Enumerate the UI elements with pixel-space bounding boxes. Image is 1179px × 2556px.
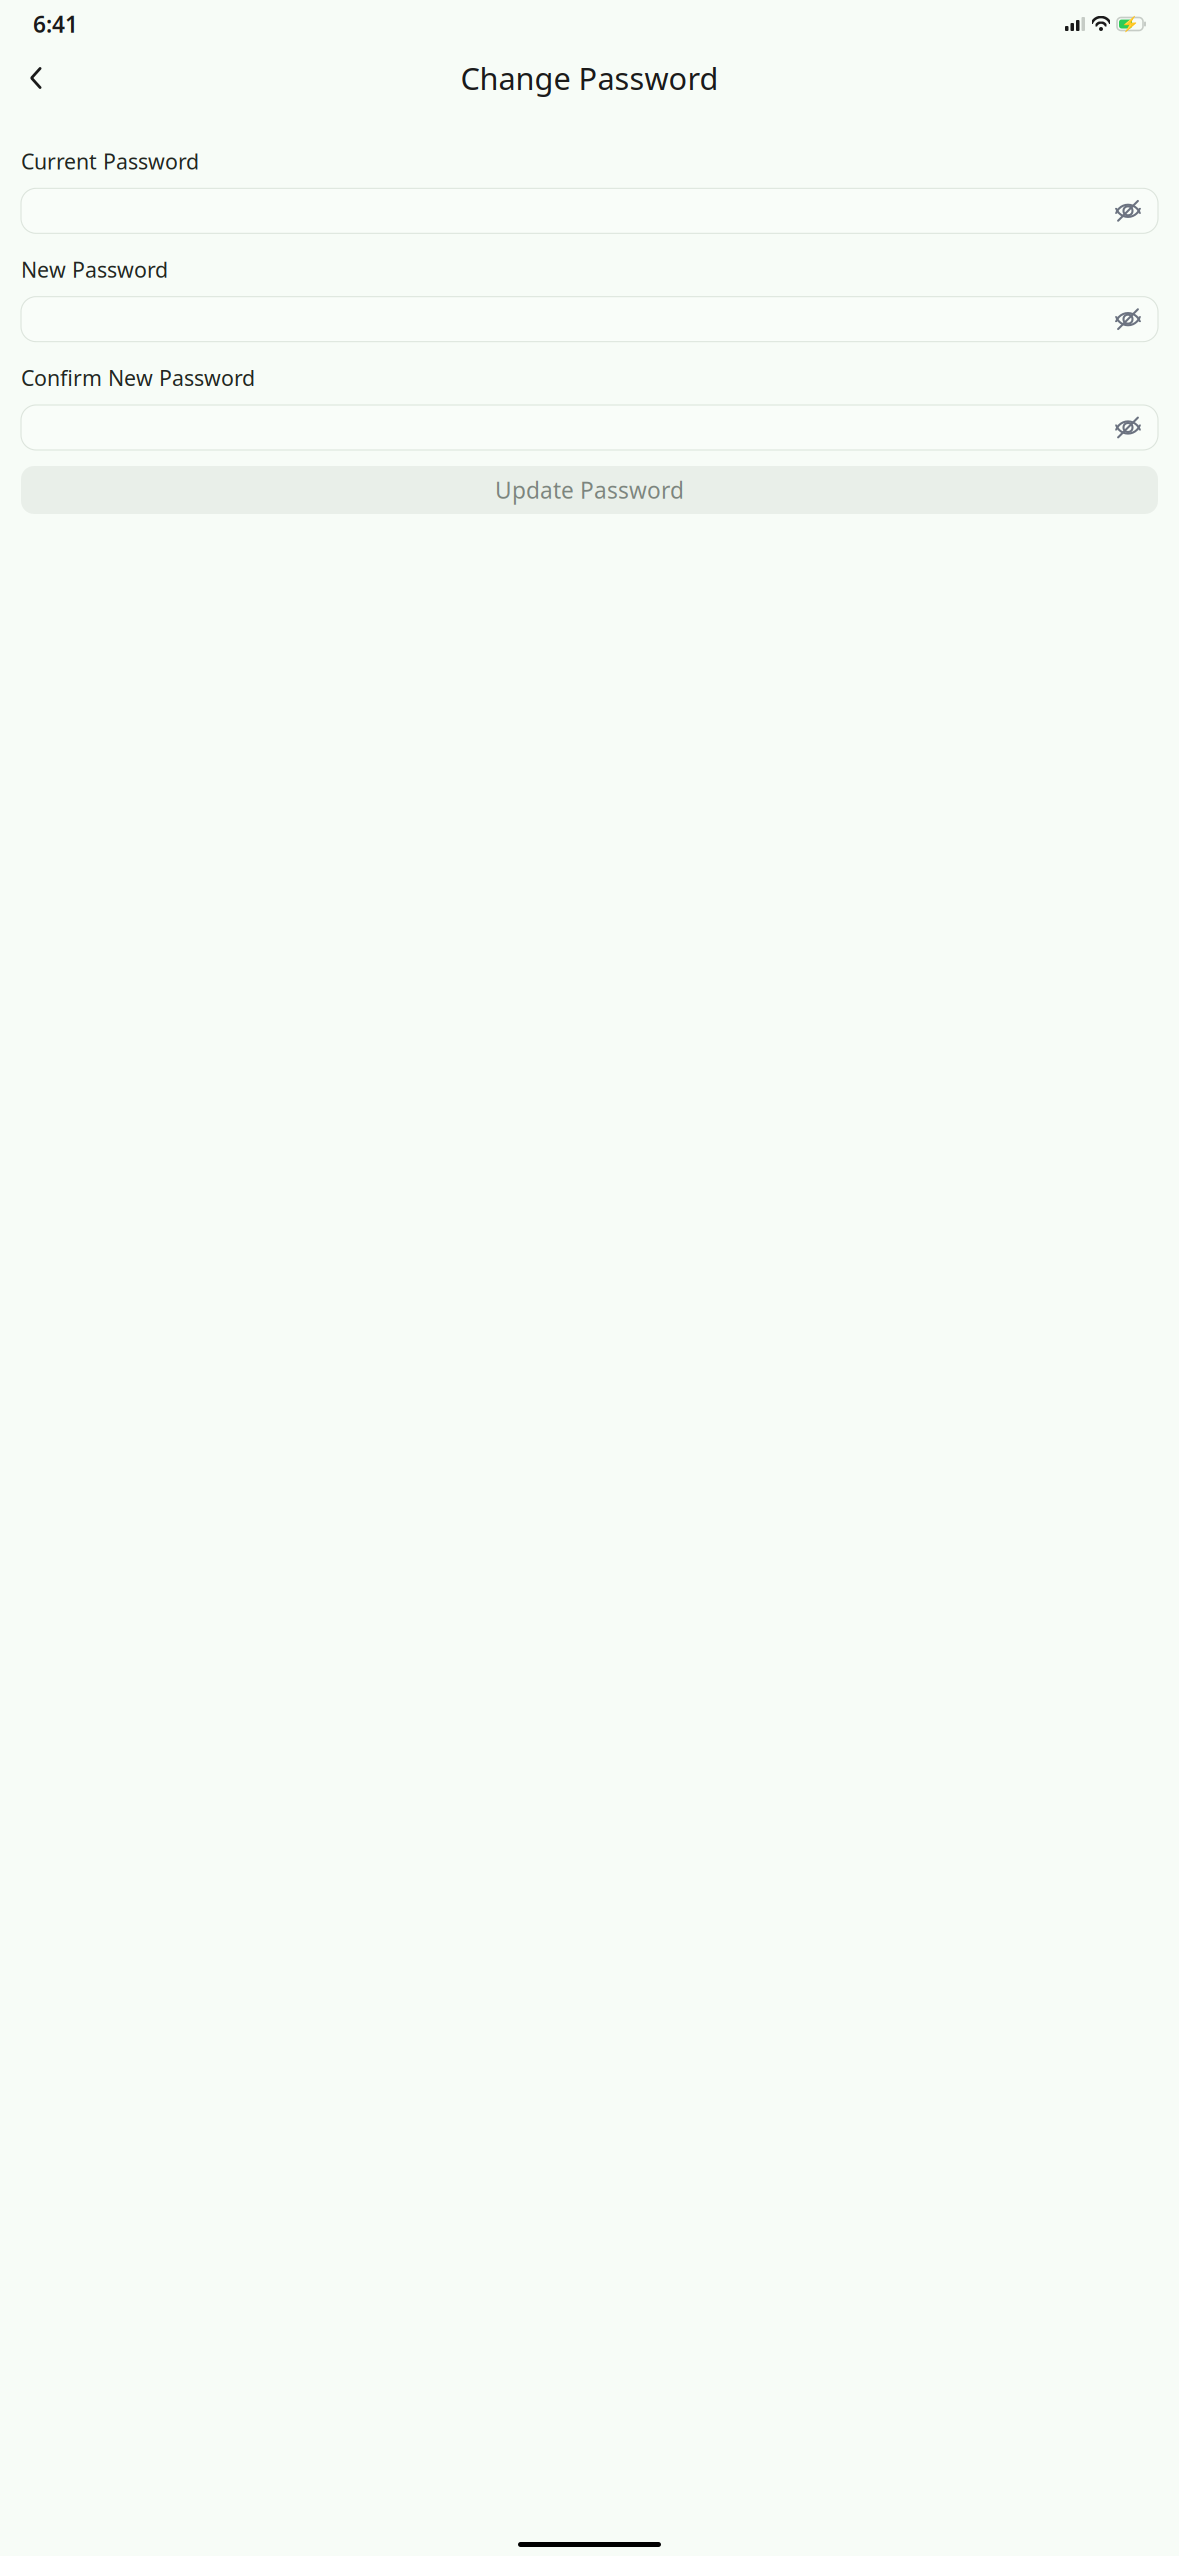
button[interactable]: Update Password xyxy=(21,466,1158,514)
button[interactable] xyxy=(21,188,1158,233)
staticText: ⚡ xyxy=(1121,16,1139,32)
button[interactable] xyxy=(21,405,1158,450)
button[interactable] xyxy=(21,297,1158,342)
button[interactable]: Back xyxy=(14,56,58,100)
staticText: Update Password xyxy=(495,475,684,505)
staticText: New Password xyxy=(21,255,168,284)
staticText: Change Password xyxy=(460,58,718,98)
staticText: Confirm New Password xyxy=(21,364,255,392)
staticText: Current Password xyxy=(21,147,199,175)
staticText: 6:41 xyxy=(33,9,78,39)
